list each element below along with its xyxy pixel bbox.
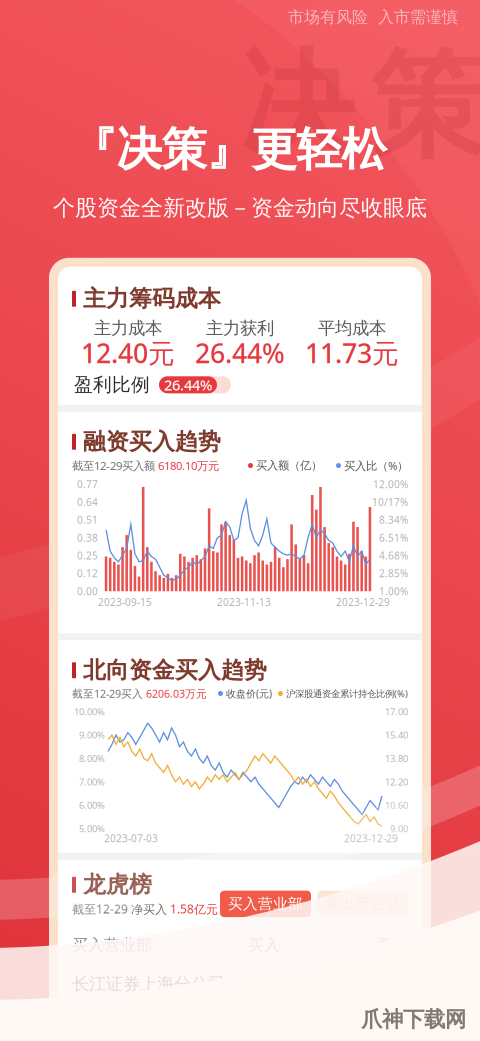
- staticText: 2023-09-15: [98, 595, 152, 609]
- staticText: 2.85%: [379, 567, 408, 580]
- staticText: 个股资金全新改版－资金动向尽收眼底: [53, 194, 427, 222]
- staticText: 龙虎榜: [83, 870, 152, 899]
- staticText: 截至12-29买入: [72, 686, 143, 701]
- staticText: 买入: [248, 935, 280, 955]
- staticText: 2023-07-03: [104, 832, 158, 845]
- staticText: 主力获利: [206, 317, 274, 339]
- button[interactable]: 卖出营业部: [317, 891, 408, 917]
- staticText: 11.73元: [305, 335, 399, 371]
- staticText: 6.00%: [79, 799, 105, 811]
- button[interactable]: 买入营业部: [220, 891, 311, 917]
- staticText: 平均成本: [318, 317, 386, 339]
- staticText: 0.25: [77, 549, 98, 562]
- staticText: 策: [369, 34, 480, 178]
- staticText: 卖出营业部: [325, 895, 400, 913]
- staticText: 12.40元: [81, 335, 175, 371]
- staticText: 5.00%: [79, 822, 105, 835]
- staticText: 12.20: [385, 775, 408, 788]
- staticText: 8.34%: [379, 513, 408, 527]
- staticText: 主力成本: [94, 317, 162, 339]
- staticText: 买入营业部: [228, 895, 303, 913]
- staticText: 17.00: [385, 705, 408, 718]
- staticText: 0.77: [77, 477, 98, 491]
- staticText: 爪神下载网: [361, 1006, 466, 1033]
- staticText: 买入额（亿）: [256, 458, 322, 473]
- staticText: 2023-11-13: [217, 595, 271, 609]
- staticText: 10/17%: [372, 495, 408, 509]
- staticText: 6206.03万元: [143, 686, 207, 701]
- staticText: 1.58亿元: [167, 901, 218, 917]
- staticText: 盈利比例: [74, 373, 150, 397]
- staticText: 13.80: [385, 752, 408, 765]
- staticText: 决: [240, 34, 355, 178]
- staticText: 融资买入趋势: [83, 427, 221, 456]
- staticText: 10.00%: [74, 705, 105, 718]
- staticText: 26.44%: [164, 375, 212, 395]
- staticText: 0.12: [77, 567, 98, 580]
- staticText: 『决策』更轻松: [71, 121, 386, 178]
- staticText: 0.51: [77, 513, 98, 527]
- staticText: 7.00%: [79, 775, 105, 788]
- staticText: 0.64: [77, 495, 98, 509]
- staticText: 主力筹码成本: [83, 284, 221, 313]
- staticText: 12.00%: [373, 477, 408, 491]
- staticText: 0.38: [77, 531, 98, 544]
- staticText: 26.44%: [195, 335, 285, 371]
- staticText: 截至12-29 净买入: [72, 901, 167, 917]
- staticText: 买入比（%）: [344, 458, 408, 473]
- staticText: 沪深股通资金累计持仓比例(%): [286, 687, 408, 700]
- staticText: 6.51%: [379, 531, 408, 544]
- staticText: 8.00%: [79, 752, 105, 765]
- staticText: 收盘价(元): [226, 687, 272, 700]
- staticText: 15.40: [385, 729, 408, 741]
- staticText: 市场有风险 入市需谨慎: [288, 7, 458, 27]
- staticText: 9.00%: [79, 729, 105, 741]
- staticText: 北向资金买入趋势: [83, 656, 267, 685]
- staticText: 4.68%: [379, 549, 408, 562]
- staticText: 买入营业部: [72, 935, 152, 955]
- staticText: 1.00%: [379, 584, 408, 598]
- staticText: 0.00: [77, 584, 98, 598]
- staticText: 2023-12-29: [344, 832, 398, 845]
- staticText: 截至12-29买入额: [72, 458, 155, 473]
- staticText: 2023-12-29: [336, 595, 390, 609]
- staticText: 10.60: [385, 799, 408, 811]
- staticText: 长江证券上海分公司: [72, 973, 225, 995]
- staticText: 6180.10万元: [155, 458, 219, 473]
- staticText: 9.00: [390, 822, 408, 835]
